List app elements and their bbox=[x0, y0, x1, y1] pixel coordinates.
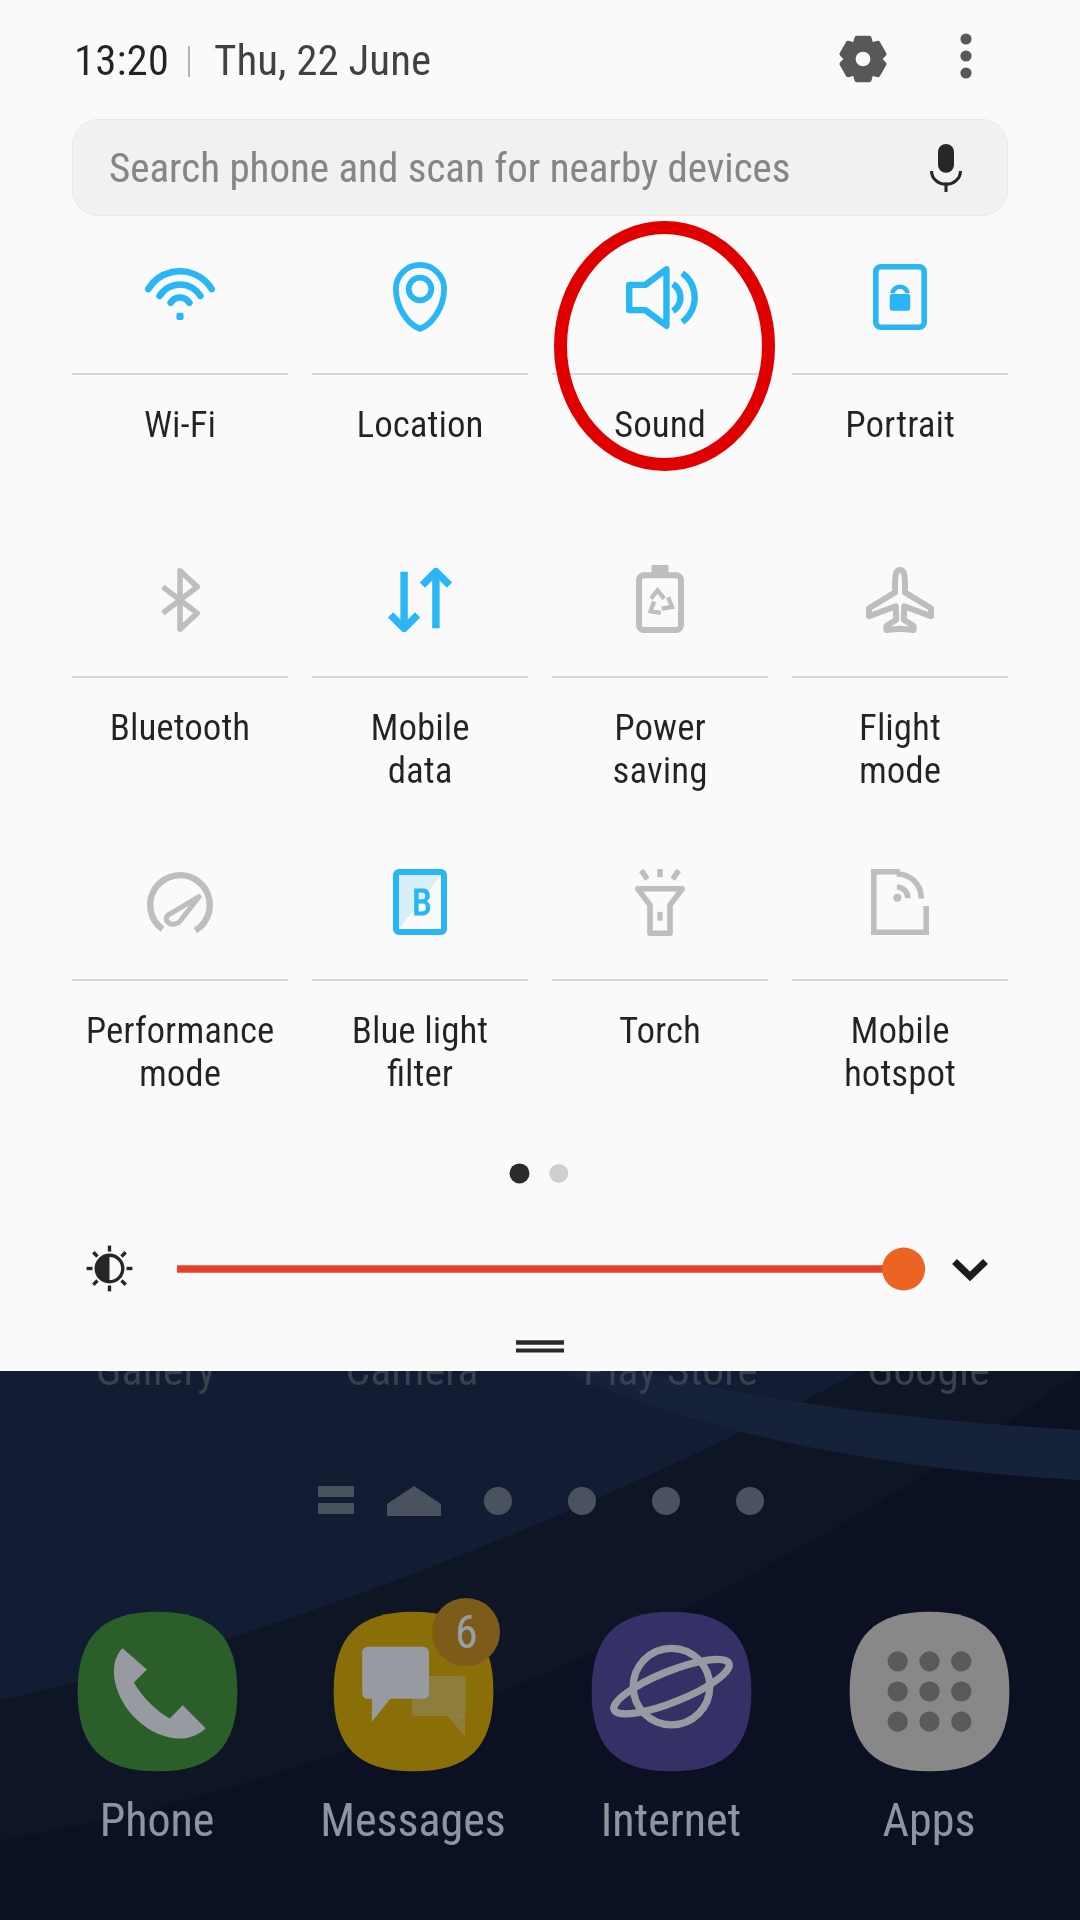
staticText: Portrait bbox=[792, 403, 1008, 446]
staticText: Google bbox=[867, 1344, 990, 1396]
staticText: 6 bbox=[455, 1605, 478, 1659]
button[interactable]: Mobile data bbox=[312, 544, 528, 792]
button[interactable]: Performance mode bbox=[72, 847, 288, 1095]
staticText: B bbox=[412, 882, 432, 924]
button[interactable]: Phone bbox=[47, 1595, 267, 1845]
staticText: Apps bbox=[819, 1793, 1039, 1847]
staticText: Power saving bbox=[552, 706, 768, 792]
staticText: Location bbox=[312, 403, 528, 446]
staticText: Gallery bbox=[95, 1344, 216, 1396]
button[interactable]: Internet bbox=[561, 1595, 781, 1845]
button[interactable]: Location bbox=[312, 241, 528, 446]
button[interactable]: Brightness slider bbox=[160, 1240, 920, 1298]
staticText: Bluetooth bbox=[72, 706, 288, 749]
button[interactable]: Search phone and scan for nearby devices bbox=[72, 119, 1008, 216]
button[interactable]: Bluetooth bbox=[72, 544, 288, 749]
staticText: Search phone and scan for nearby devices bbox=[109, 144, 791, 192]
button[interactable]: Flight mode bbox=[792, 544, 1008, 792]
button[interactable]: Mobile hotspot bbox=[792, 847, 1008, 1095]
button[interactable]: Blue light filter bbox=[312, 847, 528, 1095]
staticText: Phone bbox=[47, 1793, 267, 1847]
staticText: Mobile data bbox=[312, 706, 528, 792]
button[interactable]: Expand brightness settings bbox=[938, 1237, 1002, 1301]
staticText: Torch bbox=[552, 1009, 768, 1052]
staticText: Performance mode bbox=[72, 1009, 288, 1095]
button[interactable]: Wi-Fi bbox=[72, 241, 288, 446]
button[interactable]: Apps bbox=[819, 1595, 1039, 1845]
button[interactable]: Sound bbox=[552, 241, 768, 446]
button[interactable]: More options bbox=[926, 16, 1006, 96]
button[interactable]: Torch bbox=[552, 847, 768, 1052]
button[interactable]: Voice search bbox=[910, 132, 982, 204]
staticText: Thu, 22 June bbox=[214, 35, 432, 85]
staticText: Wi-Fi bbox=[72, 403, 288, 446]
staticText: Camera bbox=[345, 1344, 479, 1396]
button[interactable]: Collapse quick settings bbox=[468, 1323, 612, 1373]
button[interactable]: Quick settings pages bbox=[490, 1148, 590, 1202]
staticText: Messages bbox=[303, 1793, 523, 1847]
button[interactable]: Brightness bbox=[70, 1229, 148, 1307]
staticText: Internet bbox=[561, 1793, 781, 1847]
staticText: Play Store bbox=[583, 1344, 758, 1396]
button[interactable]: Settings bbox=[820, 16, 906, 102]
staticText: Sound bbox=[552, 403, 768, 446]
staticText: Blue light filter bbox=[312, 1009, 528, 1095]
staticText: 13:20 bbox=[74, 35, 169, 85]
button[interactable]: Power saving bbox=[552, 544, 768, 792]
staticText: Mobile hotspot bbox=[792, 1009, 1008, 1095]
button[interactable]: 6 bbox=[303, 1595, 523, 1845]
button[interactable]: Portrait bbox=[792, 241, 1008, 446]
staticText: Flight mode bbox=[792, 706, 1008, 792]
